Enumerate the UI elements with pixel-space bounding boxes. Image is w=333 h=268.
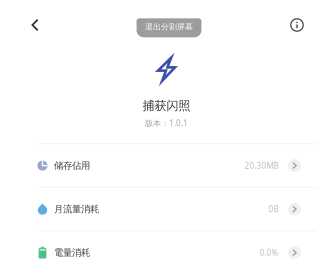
staticText: 0.0% — [259, 247, 278, 258]
button[interactable]: About — [283, 11, 311, 39]
button[interactable]: 退出分割屏幕 — [134, 17, 199, 36]
button[interactable]: 電量消耗 — [17, 231, 316, 268]
button[interactable]: 储存佔用 — [17, 144, 316, 187]
staticText: 20.30MB — [244, 160, 278, 171]
staticText: 储存佔用 — [54, 160, 90, 171]
staticText: 版本：1.0.1 — [145, 118, 188, 128]
staticText: 捕获闪照 — [142, 98, 190, 113]
button[interactable]: 月流量消耗 — [17, 188, 316, 230]
button[interactable]: Back — [21, 11, 49, 39]
staticText: 月流量消耗 — [54, 203, 99, 215]
staticText: 電量消耗 — [54, 247, 90, 258]
staticText: 退出分割屏幕 — [145, 22, 193, 32]
staticText: 0B — [268, 204, 278, 214]
